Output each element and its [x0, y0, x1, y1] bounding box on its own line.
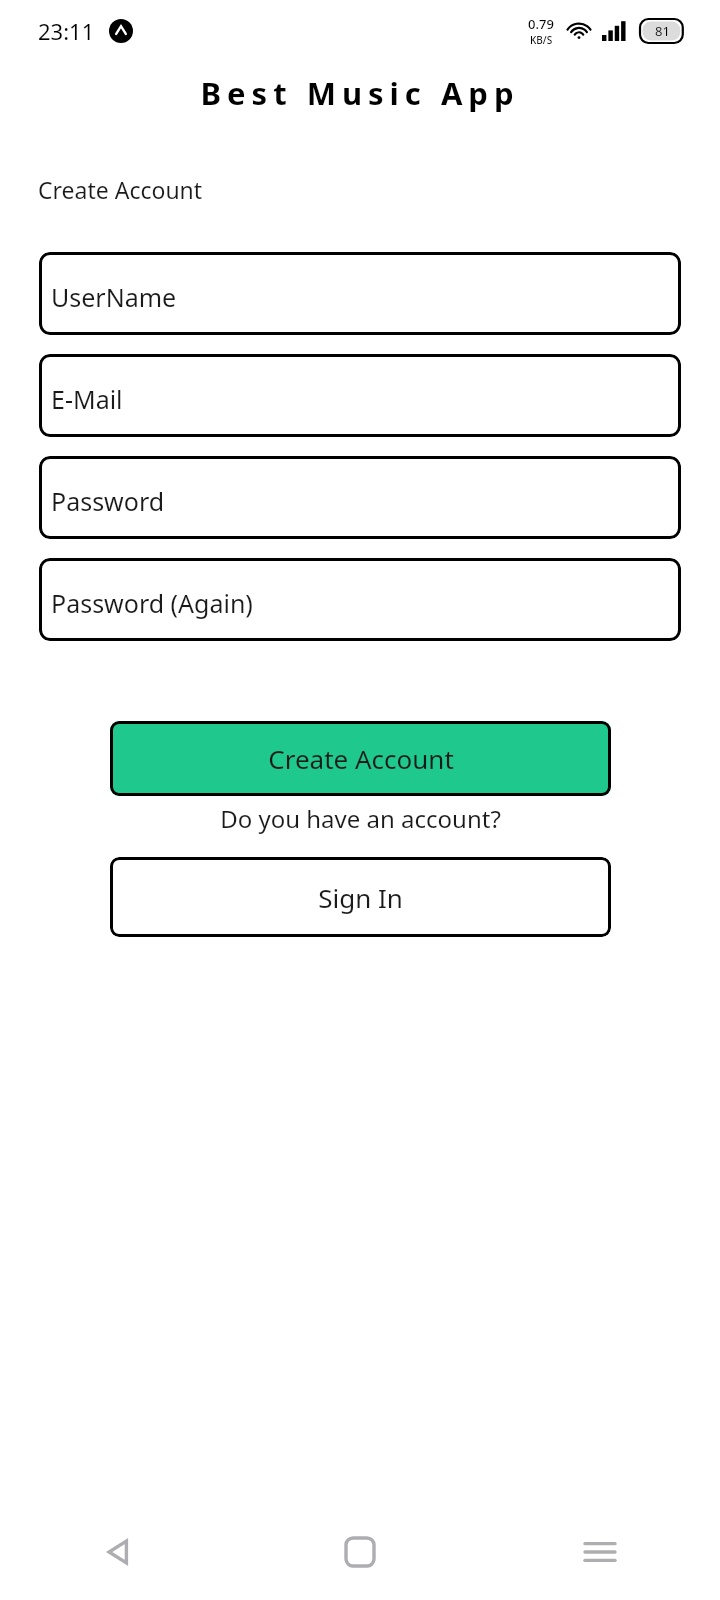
staticText: 0.79: [528, 15, 554, 33]
staticText: Best Music App: [200, 72, 520, 114]
staticText: UserName: [51, 280, 177, 314]
staticText: Create Account: [38, 174, 203, 205]
button[interactable]: UserName: [39, 252, 681, 335]
button[interactable]: Sign In: [110, 857, 611, 937]
button[interactable]: Create Account: [110, 721, 611, 796]
staticText: KB/S: [530, 33, 553, 47]
button[interactable]: E-Mail: [39, 354, 681, 437]
staticText: Password (Again): [51, 586, 253, 620]
staticText: Do you have an account?: [220, 802, 501, 835]
button[interactable]: Password: [39, 456, 681, 539]
staticText: 81: [655, 22, 670, 40]
button[interactable]: Back: [75, 1507, 165, 1597]
staticText: 23:11: [38, 16, 95, 46]
button[interactable]: Password (Again): [39, 558, 681, 641]
staticText: Sign In: [318, 880, 403, 915]
staticText: Password: [51, 484, 165, 518]
staticText: Create Account: [268, 741, 454, 776]
button[interactable]: Home: [315, 1507, 405, 1597]
staticText: E-Mail: [51, 382, 123, 416]
button[interactable]: Recent apps: [555, 1507, 645, 1597]
